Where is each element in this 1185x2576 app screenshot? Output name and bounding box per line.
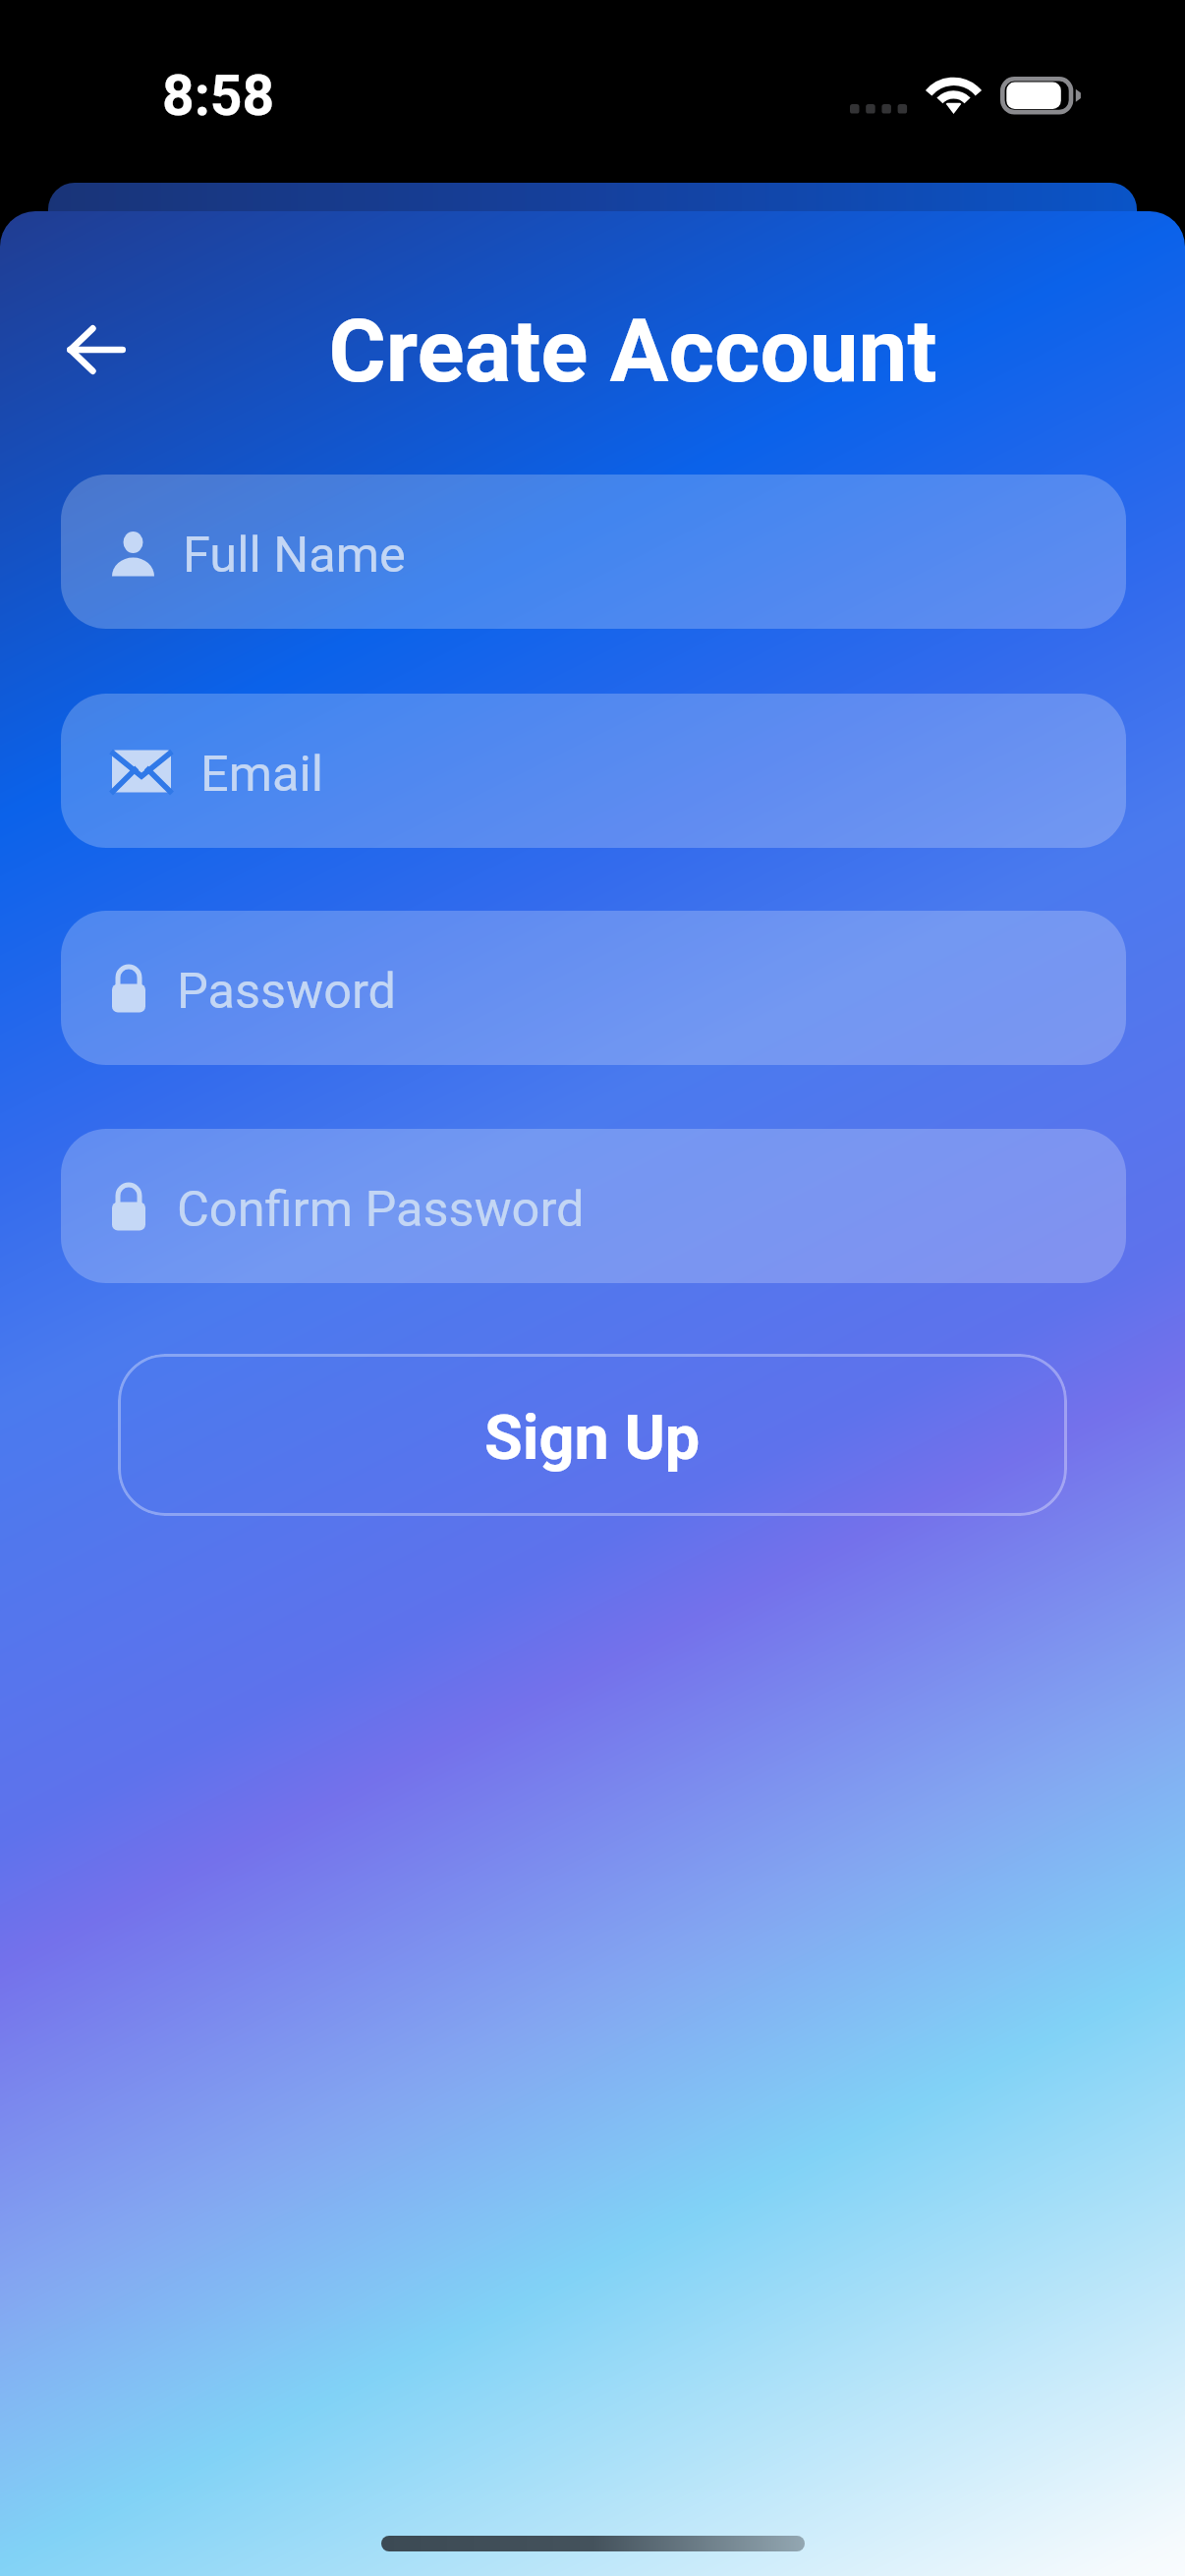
button[interactable]: Back [52, 306, 141, 394]
button[interactable]: Confirm Password [61, 1129, 1126, 1283]
button[interactable]: Sign Up [118, 1354, 1067, 1516]
staticText: 8:58 [162, 63, 275, 129]
button[interactable]: Password [61, 911, 1126, 1065]
staticText: Create Account [141, 300, 1124, 402]
staticText: Full Name [183, 526, 406, 584]
staticText: Confirm Password [177, 1180, 585, 1238]
staticText: Sign Up [484, 1402, 701, 1475]
button[interactable]: Full Name [61, 475, 1126, 629]
staticText: Password [177, 962, 397, 1020]
staticText: Email [200, 745, 324, 803]
button[interactable]: Email [61, 694, 1126, 848]
